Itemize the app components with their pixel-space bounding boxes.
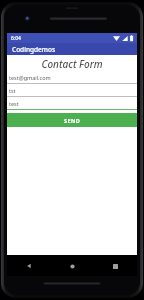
staticText: Codingdemos: [12, 45, 56, 54]
staticText: Contact Form: [41, 57, 103, 71]
button[interactable]: SEND: [7, 113, 137, 127]
staticText: test@gmail.com: [9, 74, 51, 81]
button[interactable]: tst: [7, 85, 137, 98]
staticText: SEND: [64, 117, 81, 124]
button[interactable]: Back: [19, 256, 39, 276]
staticText: 6:04: [11, 35, 21, 42]
button[interactable]: test: [7, 98, 137, 111]
staticText: test: [9, 100, 19, 107]
button[interactable]: Recent apps: [105, 256, 125, 276]
button[interactable]: Home: [62, 256, 82, 276]
button[interactable]: test@gmail.com: [7, 72, 137, 85]
staticText: tst: [9, 87, 16, 94]
